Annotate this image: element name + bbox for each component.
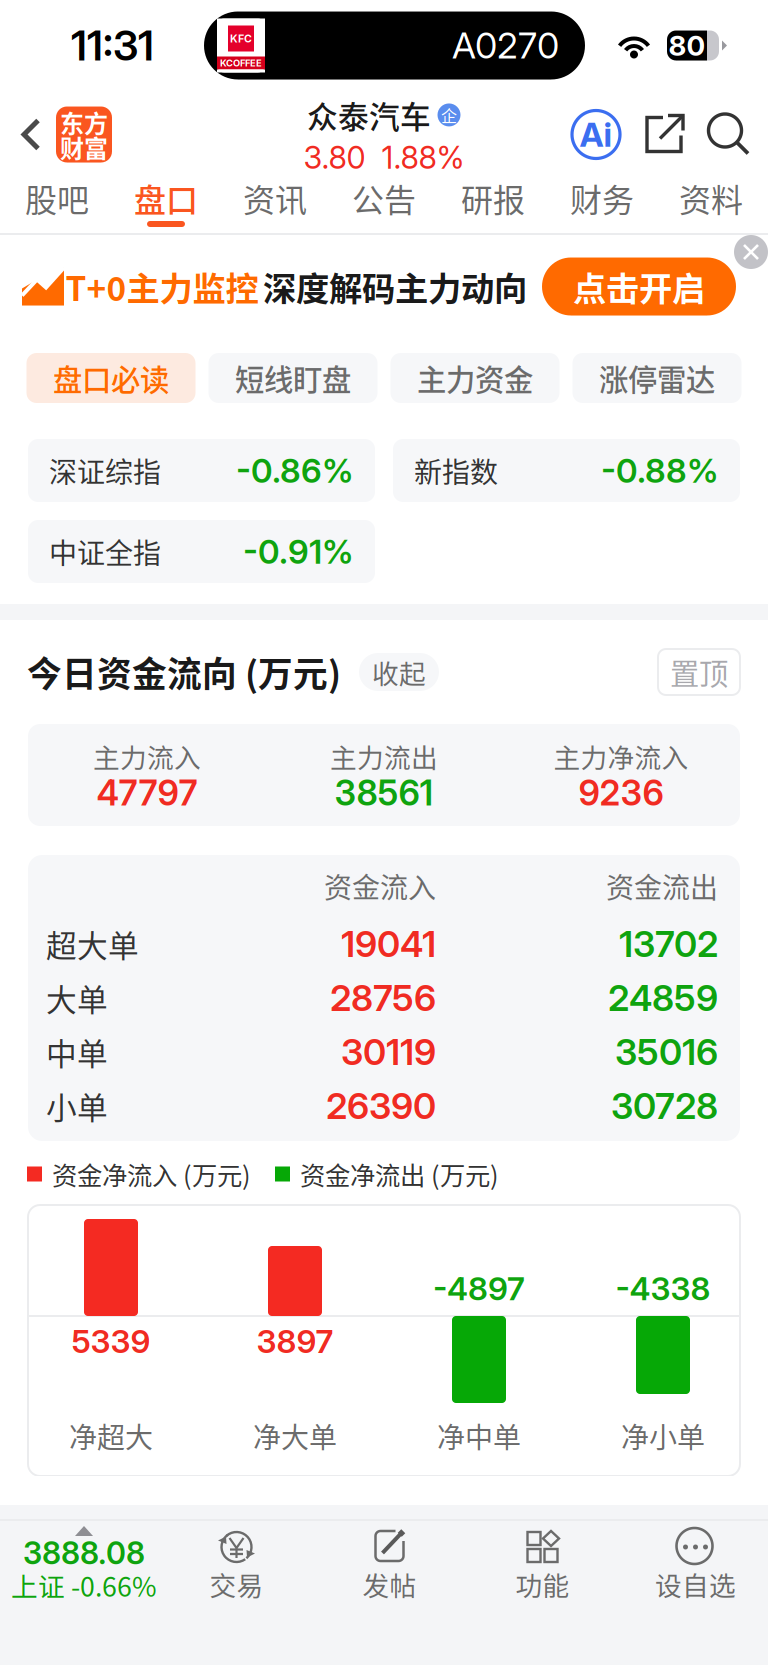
staticText: 上证 -0.66%	[11, 1566, 157, 1604]
button[interactable]: 发帖	[313, 1521, 466, 1615]
button[interactable]: 中证全指	[28, 520, 375, 583]
staticText: 研报	[461, 175, 525, 221]
staticText: 3.80 1.88%	[303, 139, 464, 176]
staticText: 大单	[46, 976, 108, 1020]
staticText: 财务	[570, 175, 634, 221]
staticText: 中证全指	[49, 531, 161, 572]
button[interactable]: 公告	[329, 176, 438, 233]
staticText: 净超大	[69, 1415, 153, 1456]
staticText: 3897	[256, 1322, 333, 1361]
staticText: KCOFFEE	[220, 57, 262, 69]
button[interactable]: 深证综指	[28, 439, 375, 502]
button[interactable]: 新指数	[393, 439, 740, 502]
staticText: 盘口	[134, 175, 198, 221]
staticText: 24859	[608, 976, 718, 1020]
staticText: T+0主力监控	[65, 262, 258, 311]
staticText: 47797	[96, 772, 197, 814]
button[interactable]: 设自选	[619, 1521, 768, 1615]
staticText: 资金流入	[324, 866, 436, 906]
button[interactable]: 资讯	[220, 176, 329, 233]
staticText: 净中单	[437, 1415, 521, 1456]
button[interactable]: 交易	[160, 1521, 313, 1615]
button[interactable]: 3888.08	[8, 1521, 160, 1615]
staticText: 众泰汽车	[307, 93, 431, 137]
staticText: 财富	[60, 130, 108, 164]
staticText: 资金流出	[606, 866, 718, 906]
staticText: 35016	[615, 1030, 718, 1074]
staticText: 收起	[372, 653, 426, 691]
staticText: 点击开启	[573, 262, 705, 311]
staticText: 小单	[46, 1084, 108, 1128]
staticText: Ai	[579, 114, 612, 155]
staticText: 今日资金流向 (万元)	[27, 647, 341, 697]
staticText: 11:31	[71, 20, 154, 70]
staticText: 38561	[334, 772, 433, 814]
button[interactable]: 搜索	[706, 111, 752, 157]
staticText: 公告	[352, 175, 416, 221]
staticText: 主力流出	[330, 737, 438, 775]
staticText: 股吧	[25, 175, 89, 221]
staticText: -4897	[433, 1269, 525, 1308]
staticText: 9236	[578, 772, 663, 814]
button[interactable]: 盘口	[111, 176, 220, 233]
staticText: 资金净流入 (万元)	[52, 1156, 251, 1192]
staticText: 盘口必读	[53, 357, 169, 399]
staticText: 80	[668, 29, 705, 62]
button[interactable]: 分享	[642, 112, 686, 156]
staticText: 交易	[209, 1565, 263, 1603]
staticText: 30119	[341, 1030, 436, 1074]
button[interactable]: 资料	[656, 176, 765, 233]
button[interactable]: 关闭	[734, 235, 768, 269]
button[interactable]: 股吧	[2, 176, 111, 233]
staticText: 企	[441, 103, 457, 127]
button[interactable]: 功能	[466, 1521, 619, 1615]
staticText: 新指数	[414, 450, 498, 491]
staticText: 深证综指	[49, 450, 161, 491]
staticText: 28756	[330, 976, 436, 1020]
staticText: 设自选	[655, 1565, 736, 1603]
button[interactable]: 收起	[359, 653, 439, 691]
staticText: 资讯	[243, 175, 307, 221]
staticText: 发帖	[362, 1565, 416, 1603]
staticText: 净小单	[621, 1415, 705, 1456]
staticText: -4338	[615, 1269, 710, 1308]
button[interactable]: 点击开启	[542, 257, 736, 315]
staticText: 置顶	[670, 651, 728, 693]
staticText: 3888.08	[23, 1534, 145, 1571]
staticText: 主力净流入	[553, 737, 688, 775]
staticText: 深度解码主力动向	[263, 262, 527, 311]
button[interactable]: 涨停雷达	[572, 353, 741, 403]
button[interactable]: 盘口必读	[26, 353, 195, 403]
staticText: -0.88%	[601, 450, 718, 491]
staticText: 资料	[679, 175, 743, 221]
button[interactable]: 主力资金	[390, 353, 559, 403]
staticText: 主力流入	[93, 737, 201, 775]
button[interactable]: 置顶	[658, 649, 740, 695]
staticText: 资金净流出 (万元)	[300, 1156, 499, 1192]
staticText: 19041	[341, 922, 436, 966]
staticText: 主力资金	[417, 357, 533, 399]
button[interactable]: 财务	[547, 176, 656, 233]
staticText: 26390	[326, 1084, 436, 1128]
staticText: 超大单	[46, 922, 139, 966]
staticText: 13702	[619, 922, 718, 966]
staticText: 短线盯盘	[235, 357, 351, 399]
staticText: KFC	[230, 32, 252, 45]
staticText: -0.91%	[243, 531, 353, 572]
staticText: -0.86%	[236, 450, 353, 491]
button[interactable]: 短线盯盘	[208, 353, 377, 403]
staticText: 30728	[611, 1084, 718, 1128]
staticText: 功能	[515, 1565, 569, 1603]
staticText: 中单	[46, 1030, 108, 1074]
staticText: A0270	[452, 24, 559, 67]
button[interactable]: AI 助手	[570, 108, 622, 160]
staticText: 涨停雷达	[599, 357, 715, 399]
staticText: 东方	[60, 105, 108, 139]
staticText: 5339	[71, 1322, 150, 1361]
button[interactable]: 返回	[0, 108, 48, 160]
staticText: 净大单	[253, 1415, 337, 1456]
button[interactable]: 研报	[438, 176, 547, 233]
